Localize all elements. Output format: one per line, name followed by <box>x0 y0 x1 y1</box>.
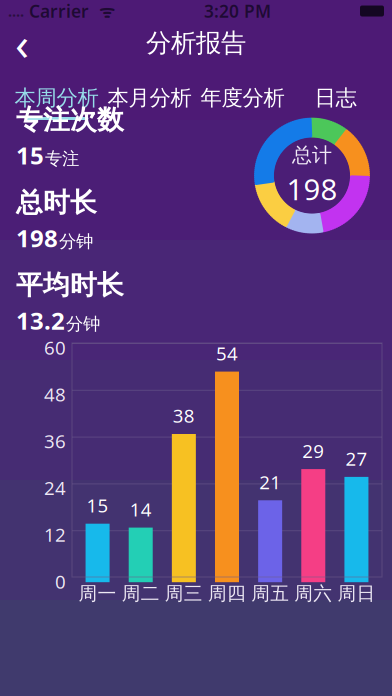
staticText: 周二 <box>122 582 160 605</box>
staticText: 专注 <box>45 148 79 169</box>
staticText: 36 <box>44 429 66 453</box>
staticText: 年度分析 <box>200 85 284 111</box>
button[interactable]: 本周分析 <box>10 64 103 120</box>
staticText: 本月分析 <box>107 85 191 111</box>
staticText: 专注次数 <box>16 104 124 136</box>
staticText: 27 <box>345 446 367 471</box>
staticText: 198 <box>286 169 337 208</box>
staticText: 48 <box>44 382 66 407</box>
staticText: 本周分析 <box>14 85 98 111</box>
button[interactable]: 日志 <box>289 64 382 120</box>
staticText: 0 <box>55 569 66 594</box>
staticText: 21 <box>259 469 281 494</box>
staticText: 周四 <box>208 582 246 605</box>
staticText: 54 <box>216 341 238 366</box>
staticText: ᯤ <box>89 0 115 22</box>
staticText: 分钟 <box>59 231 93 252</box>
staticText: 周一 <box>79 582 117 605</box>
staticText: 周六 <box>294 582 332 605</box>
staticText: 3:20 PM <box>204 0 271 22</box>
staticText: 15 <box>87 493 109 518</box>
staticText: 13.2 <box>16 305 65 336</box>
button[interactable]: 年度分析 <box>196 64 289 120</box>
staticText: 198 <box>16 222 58 254</box>
staticText: 总计 <box>292 143 332 167</box>
staticText: 周日 <box>337 582 375 605</box>
staticText: 周五 <box>251 582 289 605</box>
staticText: 38 <box>173 403 195 428</box>
staticText: Carrier <box>24 0 89 22</box>
staticText: 平均时长 <box>16 269 124 302</box>
staticText: ‹ <box>15 13 29 73</box>
staticText: 29 <box>302 438 324 463</box>
staticText: 15 <box>16 139 44 171</box>
staticText: 12 <box>44 522 66 547</box>
staticText: .... <box>8 1 24 21</box>
staticText: 周三 <box>165 582 203 605</box>
staticText: 60 <box>44 335 66 360</box>
button[interactable]: Back <box>0 22 44 64</box>
staticText: 分析报告 <box>146 27 246 58</box>
staticText: 24 <box>44 475 66 500</box>
button[interactable]: 本月分析 <box>103 64 196 120</box>
staticText: 14 <box>130 497 152 522</box>
staticText: 日志 <box>314 85 356 111</box>
staticText: 分钟 <box>66 313 100 335</box>
staticText: 总时长 <box>16 186 97 219</box>
